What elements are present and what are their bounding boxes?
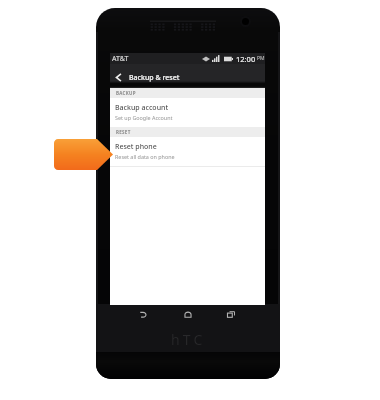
button[interactable]: Recent apps	[220, 307, 242, 321]
staticText: Backup & reset	[129, 73, 180, 83]
staticText: hTC	[171, 330, 206, 348]
other: Navigate up	[115, 73, 122, 82]
staticText: Reset all data on phone	[115, 153, 175, 160]
other: Callout pointer	[54, 139, 113, 170]
other: Recent apps	[227, 311, 235, 318]
button[interactable]: Back	[132, 307, 154, 321]
button[interactable]: Reset phone	[110, 137, 265, 166]
staticText: PM	[257, 55, 265, 62]
staticText: 12:00	[236, 54, 256, 64]
staticText: Set up Google Account	[115, 114, 173, 121]
button[interactable]: Navigate up	[110, 64, 265, 88]
other: Back	[139, 311, 147, 318]
staticText: RESET	[116, 129, 131, 135]
staticText: AT&T	[112, 54, 129, 64]
staticText: BACKUP	[116, 90, 136, 96]
staticText: Reset phone	[115, 142, 157, 152]
staticText: Backup account	[115, 103, 169, 113]
other: Home	[184, 311, 192, 318]
button[interactable]: Home	[177, 307, 199, 321]
button[interactable]: Backup account	[110, 98, 265, 127]
